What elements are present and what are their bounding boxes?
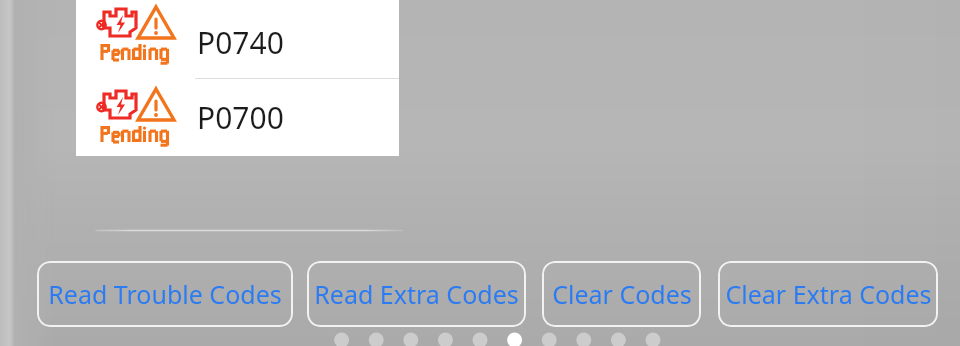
- button[interactable]: P0700: [76, 78, 399, 156]
- staticText: P0740: [197, 22, 284, 63]
- staticText: Read Trouble Codes: [48, 277, 282, 311]
- staticText: Clear Codes: [552, 277, 692, 311]
- button[interactable]: Read Extra Codes: [307, 261, 526, 327]
- other: Pending trouble code: [96, 84, 176, 146]
- staticText: Read Extra Codes: [314, 277, 519, 311]
- button[interactable]: Clear Extra Codes: [718, 261, 938, 327]
- button[interactable]: P0740: [76, 0, 399, 78]
- staticText: Clear Extra Codes: [725, 277, 932, 311]
- button[interactable]: Clear Codes: [542, 261, 701, 327]
- other: Pending trouble code: [96, 2, 176, 64]
- button[interactable]: Read Trouble Codes: [37, 261, 293, 327]
- staticText: P0700: [197, 97, 284, 138]
